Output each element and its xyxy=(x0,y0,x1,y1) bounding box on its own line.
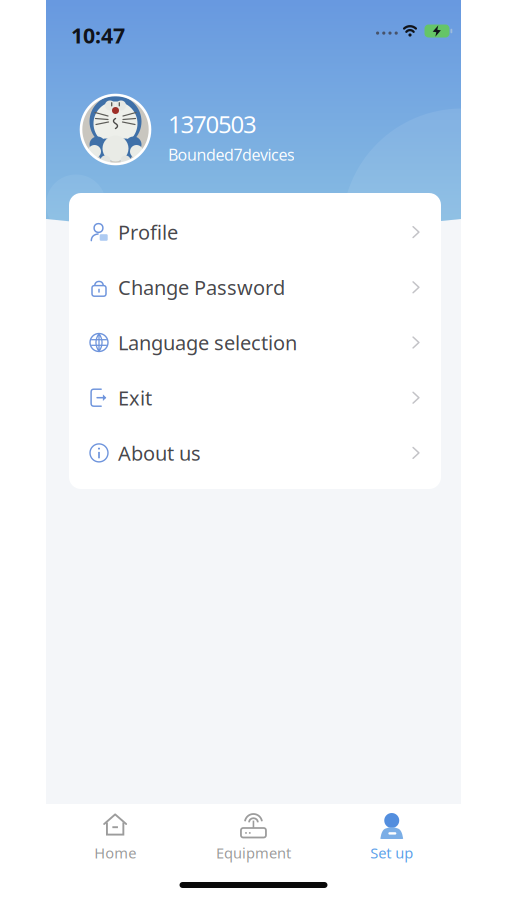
staticText: Home xyxy=(94,843,136,862)
button[interactable]: Equipment xyxy=(184,813,323,862)
button[interactable]: Home xyxy=(46,813,184,862)
button[interactable]: About us xyxy=(69,425,441,480)
button[interactable]: Exit xyxy=(69,370,441,425)
staticText: 1370503 xyxy=(168,108,257,140)
staticText: Exit xyxy=(118,384,152,411)
staticText: Equipment xyxy=(216,843,291,862)
button[interactable]: Profile photo xyxy=(46,0,115,69)
staticText: Language selection xyxy=(118,329,297,356)
staticText: Profile xyxy=(118,219,178,245)
button[interactable]: Set up xyxy=(323,813,461,862)
staticText: Change Password xyxy=(118,274,285,301)
staticText: 10:47 xyxy=(71,21,125,49)
button[interactable]: Language selection xyxy=(69,315,441,370)
staticText: Bounded7devices xyxy=(168,144,295,165)
staticText: Set up xyxy=(370,843,413,862)
button[interactable]: Profile xyxy=(69,204,441,260)
staticText: About us xyxy=(118,440,201,466)
button[interactable]: Change Password xyxy=(69,260,441,315)
